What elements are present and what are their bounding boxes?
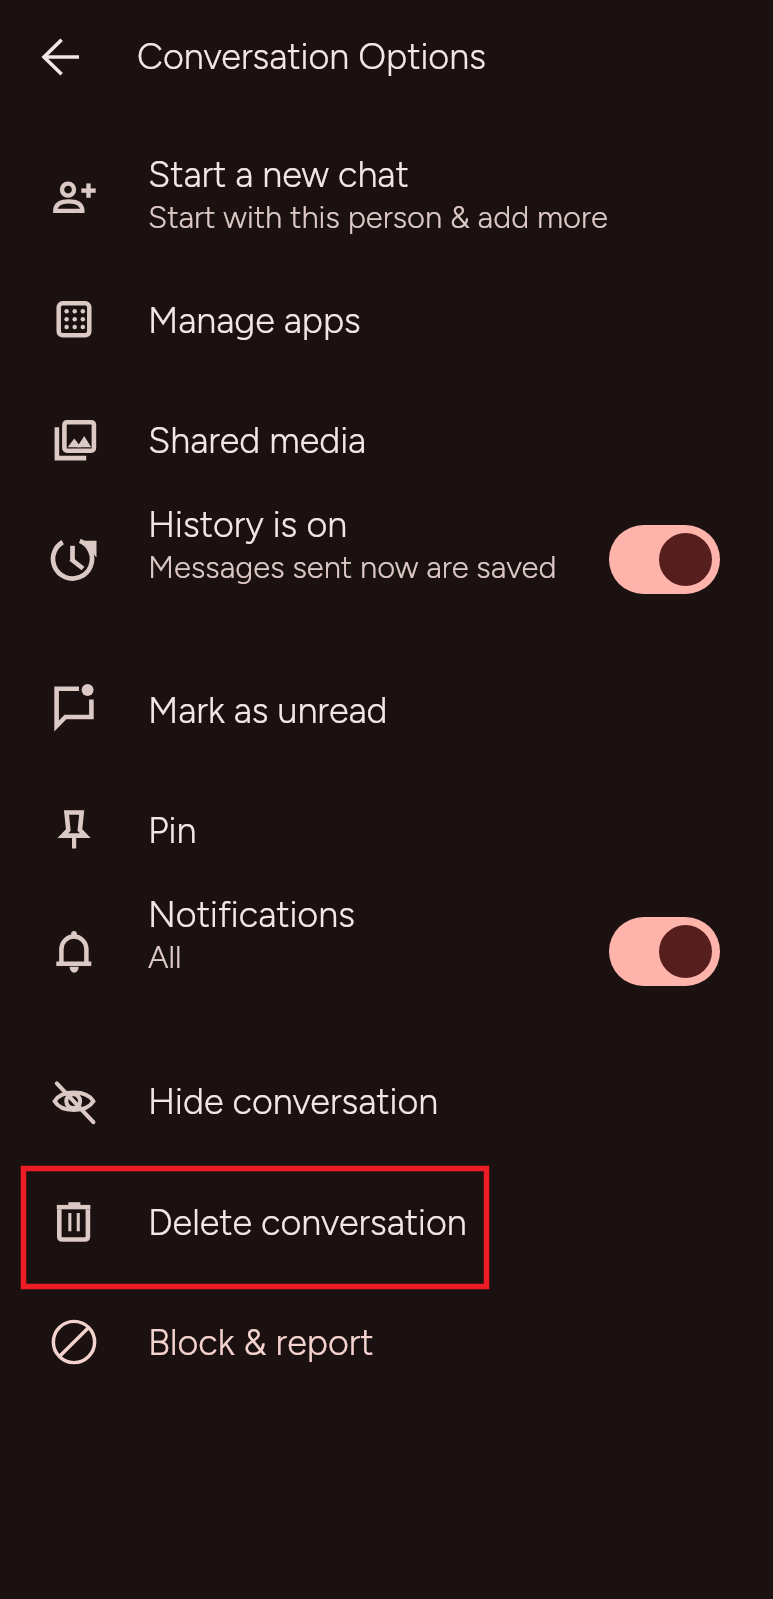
button[interactable]: History is on <box>0 499 773 620</box>
staticText: Notifications <box>148 893 355 936</box>
staticText: Messages sent now are saved <box>148 549 557 586</box>
staticText: Delete conversation <box>148 1201 467 1244</box>
button[interactable]: Toggle <box>609 525 720 594</box>
button[interactable]: Manage apps <box>0 258 773 379</box>
staticText: History is on <box>148 503 348 546</box>
button[interactable]: Shared media <box>0 379 773 500</box>
staticText: Start with this person & add more <box>148 199 608 236</box>
button[interactable]: Back <box>26 23 98 95</box>
button[interactable]: Pin <box>0 769 773 890</box>
staticText: Mark as unread <box>148 689 388 732</box>
staticText: Conversation Options <box>137 35 486 78</box>
button[interactable]: Notifications <box>0 891 773 1012</box>
button[interactable]: Toggle <box>609 917 720 986</box>
staticText: Manage apps <box>148 299 361 342</box>
staticText: Start a new chat <box>148 153 409 196</box>
staticText: Shared media <box>148 419 367 462</box>
staticText: Block & report <box>148 1321 374 1364</box>
staticText: Pin <box>148 809 197 852</box>
staticText: All <box>148 939 182 976</box>
button[interactable]: Start a new chat <box>0 134 773 255</box>
button[interactable]: Block & report <box>0 1281 773 1402</box>
button[interactable]: Hide conversation <box>0 1040 773 1161</box>
button[interactable]: Delete conversation <box>0 1161 773 1282</box>
button[interactable]: Mark as unread <box>0 648 773 769</box>
staticText: Hide conversation <box>148 1080 439 1123</box>
